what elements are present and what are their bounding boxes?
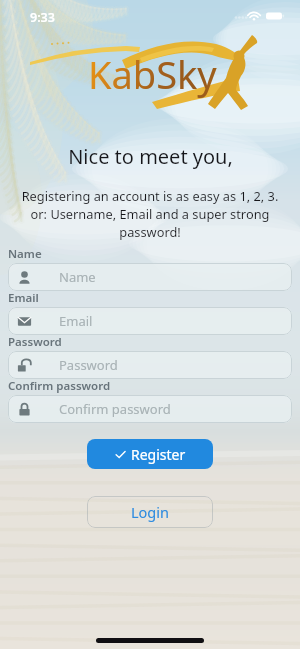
button[interactable]: Password (8, 351, 292, 379)
staticText: 9:33 (30, 9, 55, 26)
staticText: Password (59, 356, 118, 374)
button[interactable]: Register (87, 439, 213, 469)
staticText: Password (8, 334, 62, 350)
button[interactable]: Confirm password (8, 395, 292, 423)
button[interactable]: Name (8, 263, 292, 291)
staticText: Email (8, 290, 39, 306)
staticText: Registering an account is as easy as 1, … (14, 187, 286, 241)
button[interactable]: Login (87, 496, 213, 528)
staticText: Email (59, 312, 93, 330)
staticText: Register (131, 445, 186, 464)
button[interactable]: Email (8, 307, 292, 335)
staticText: Nice to meet you, (68, 143, 233, 170)
staticText: Name (8, 246, 42, 262)
staticText: Name (59, 268, 96, 286)
staticText: Login (131, 502, 169, 522)
staticText: KabSky (88, 48, 217, 100)
staticText: Confirm password (59, 400, 171, 418)
staticText: Confirm password (8, 378, 111, 394)
